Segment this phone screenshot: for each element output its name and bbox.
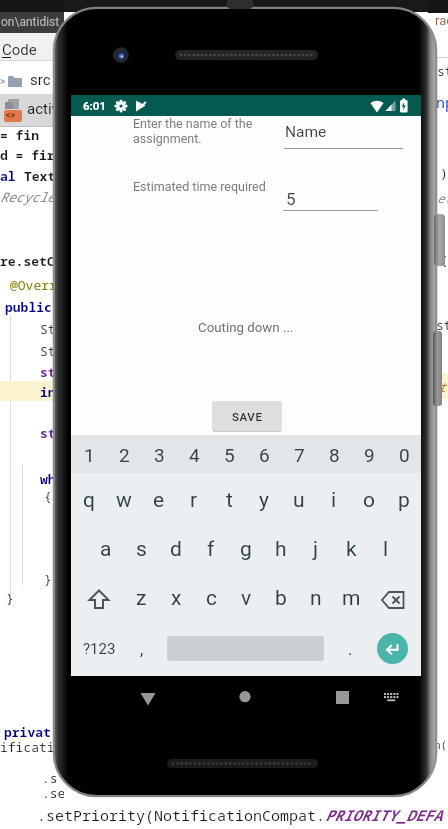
button[interactable]: x: [159, 582, 193, 614]
staticText: st: [40, 424, 56, 442]
staticText: Enter the name of the: [133, 116, 253, 131]
staticText: rac: [435, 13, 448, 28]
button[interactable]: r: [177, 484, 211, 516]
button[interactable]: g: [229, 533, 263, 565]
staticText: ,: [140, 639, 144, 659]
button[interactable]: [378, 582, 412, 616]
staticText: 5: [286, 189, 296, 209]
button[interactable]: [229, 684, 261, 714]
staticText: st: [40, 363, 56, 381]
staticText: n(: [434, 737, 448, 752]
staticText: ificati: [0, 738, 55, 756]
staticText: 6: [259, 444, 270, 466]
button[interactable]: [81, 582, 115, 616]
staticText: y: [259, 488, 269, 513]
button[interactable]: b: [264, 582, 298, 614]
staticText: np: [436, 92, 448, 112]
staticText: d: [170, 537, 182, 562]
staticText: <>: [6, 110, 16, 121]
staticText: e: [153, 488, 165, 513]
button[interactable]: v: [229, 582, 263, 614]
button[interactable]: j: [299, 533, 333, 565]
button[interactable]: 0: [387, 439, 421, 471]
staticText: g: [240, 537, 252, 562]
button[interactable]: n: [299, 582, 333, 614]
staticText: Recycle: [0, 188, 55, 206]
button[interactable]: SAVE: [212, 401, 282, 431]
staticText: s: [136, 537, 147, 562]
button[interactable]: u: [282, 484, 316, 516]
button[interactable]: [132, 684, 164, 714]
button[interactable]: f: [194, 533, 228, 565]
button[interactable]: e: [142, 484, 176, 516]
button[interactable]: q: [72, 484, 106, 516]
staticText: src: [30, 71, 51, 89]
staticText: .se: [42, 784, 64, 802]
staticText: j: [313, 537, 319, 562]
staticText: privat: [4, 723, 51, 741]
staticText: 1: [84, 444, 95, 466]
staticText: r: [190, 488, 198, 513]
staticText: {: [440, 251, 448, 269]
staticText: z: [136, 586, 147, 611]
button[interactable]: [327, 684, 359, 714]
staticText: re.setC: [0, 252, 55, 270]
button[interactable]: 3: [142, 439, 176, 471]
staticText: assignment.: [133, 131, 202, 146]
button[interactable]: 1: [72, 439, 106, 471]
button[interactable]: w: [107, 484, 141, 516]
staticText: St: [40, 342, 56, 360]
button[interactable]: d: [159, 533, 193, 565]
button[interactable]: .: [333, 633, 367, 665]
button[interactable]: m: [334, 582, 368, 614]
staticText: k: [346, 537, 357, 562]
button[interactable]: 5: [212, 439, 246, 471]
staticText: on\antidist: [1, 15, 60, 29]
button[interactable]: 9: [352, 439, 386, 471]
staticText: i: [331, 488, 337, 513]
staticText: n: [310, 586, 322, 611]
button[interactable]: Name: [284, 120, 404, 149]
button[interactable]: 5: [283, 186, 378, 210]
button[interactable]: t: [212, 484, 246, 516]
button[interactable]: k: [334, 533, 368, 565]
button[interactable]: a: [89, 533, 123, 565]
staticText: al: [0, 167, 16, 185]
staticText: 8: [329, 444, 340, 466]
button[interactable]: 7: [282, 439, 316, 471]
staticText: Estimated time required: [133, 179, 266, 194]
button[interactable]: h: [264, 533, 298, 565]
button[interactable]: ,: [125, 633, 159, 665]
staticText: 2: [119, 444, 130, 466]
button[interactable]: 4: [177, 439, 211, 471]
button[interactable]: ?123: [82, 633, 116, 665]
staticText: st: [437, 62, 448, 80]
staticText: }: [6, 589, 14, 607]
staticText: b: [275, 586, 287, 611]
button[interactable]: z: [124, 582, 158, 614]
button[interactable]: [377, 633, 408, 664]
button[interactable]: l: [369, 533, 403, 565]
staticText: }: [44, 570, 52, 588]
button[interactable]: y: [247, 484, 281, 516]
button[interactable]: [376, 684, 406, 712]
staticText: St: [40, 320, 56, 338]
staticText: 3: [154, 444, 165, 466]
staticText: p: [398, 488, 410, 513]
staticText: wh: [40, 470, 56, 488]
button[interactable]: 8: [317, 439, 351, 471]
staticText: @Overr: [10, 276, 57, 294]
button[interactable]: 6: [247, 439, 281, 471]
button[interactable]: 2: [107, 439, 141, 471]
button[interactable]: i: [317, 484, 351, 516]
button[interactable]: s: [124, 533, 158, 565]
staticText: 0: [399, 444, 410, 466]
staticText: m: [342, 586, 361, 611]
button[interactable]: c: [194, 582, 228, 614]
staticText: Name: [285, 123, 327, 141]
button[interactable]: p: [387, 484, 421, 516]
staticText: c: [206, 586, 217, 611]
button[interactable]: o: [352, 484, 386, 516]
staticText: .s: [42, 769, 58, 787]
